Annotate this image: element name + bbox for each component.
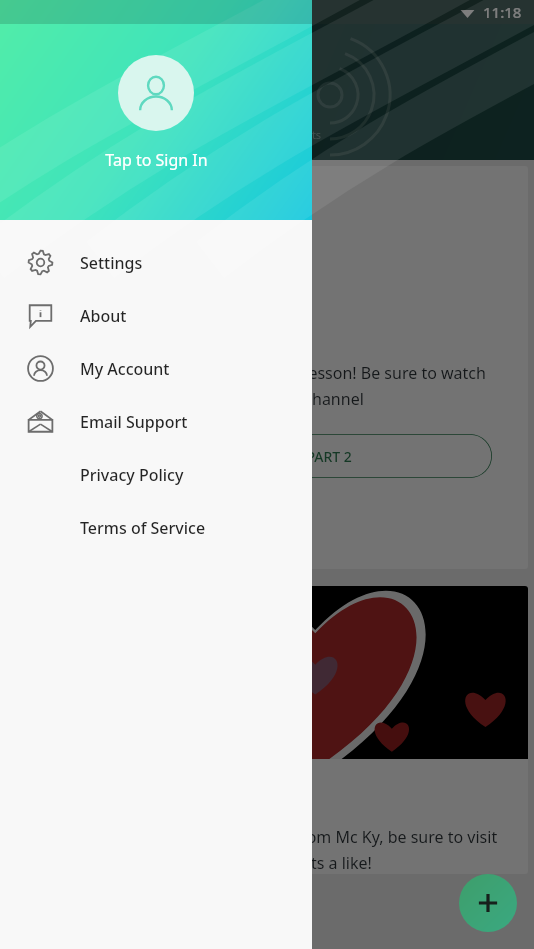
staticText: My Account <box>80 358 170 380</box>
button[interactable]: Privacy Policy <box>0 448 312 501</box>
button[interactable]: Email Support <box>0 395 312 448</box>
staticText: GETTING STARTED — PART 2 <box>163 447 352 466</box>
button[interactable]: About <box>0 289 312 342</box>
button[interactable]: Settings <box>0 236 312 289</box>
staticText: Check out a Valentine's Day artwork from… <box>22 826 512 874</box>
staticText: Privacy Policy <box>80 464 184 486</box>
staticText: Email Support <box>80 411 188 433</box>
staticText: Terms of Service <box>80 517 206 539</box>
button[interactable]: Welcome to the first motion graphics les… <box>6 166 528 569</box>
staticText: My Elements <box>255 127 322 142</box>
button[interactable]: Add <box>459 874 517 932</box>
button[interactable]: Tap to Sign In <box>0 0 312 220</box>
staticText: Tap to Sign In <box>105 149 208 171</box>
button[interactable]: My Account <box>0 342 312 395</box>
button[interactable]: My Elements <box>255 98 322 142</box>
button[interactable]: GETTING STARTED — PART 2 <box>22 434 492 478</box>
button[interactable]: Terms of Service <box>0 501 312 554</box>
staticText: 11:18 <box>483 2 522 22</box>
staticText: About <box>80 305 127 327</box>
staticText: Settings <box>80 252 143 274</box>
button[interactable]: Shout Outs! <box>6 586 528 874</box>
staticText: Welcome to the first motion graphics les… <box>22 362 512 410</box>
